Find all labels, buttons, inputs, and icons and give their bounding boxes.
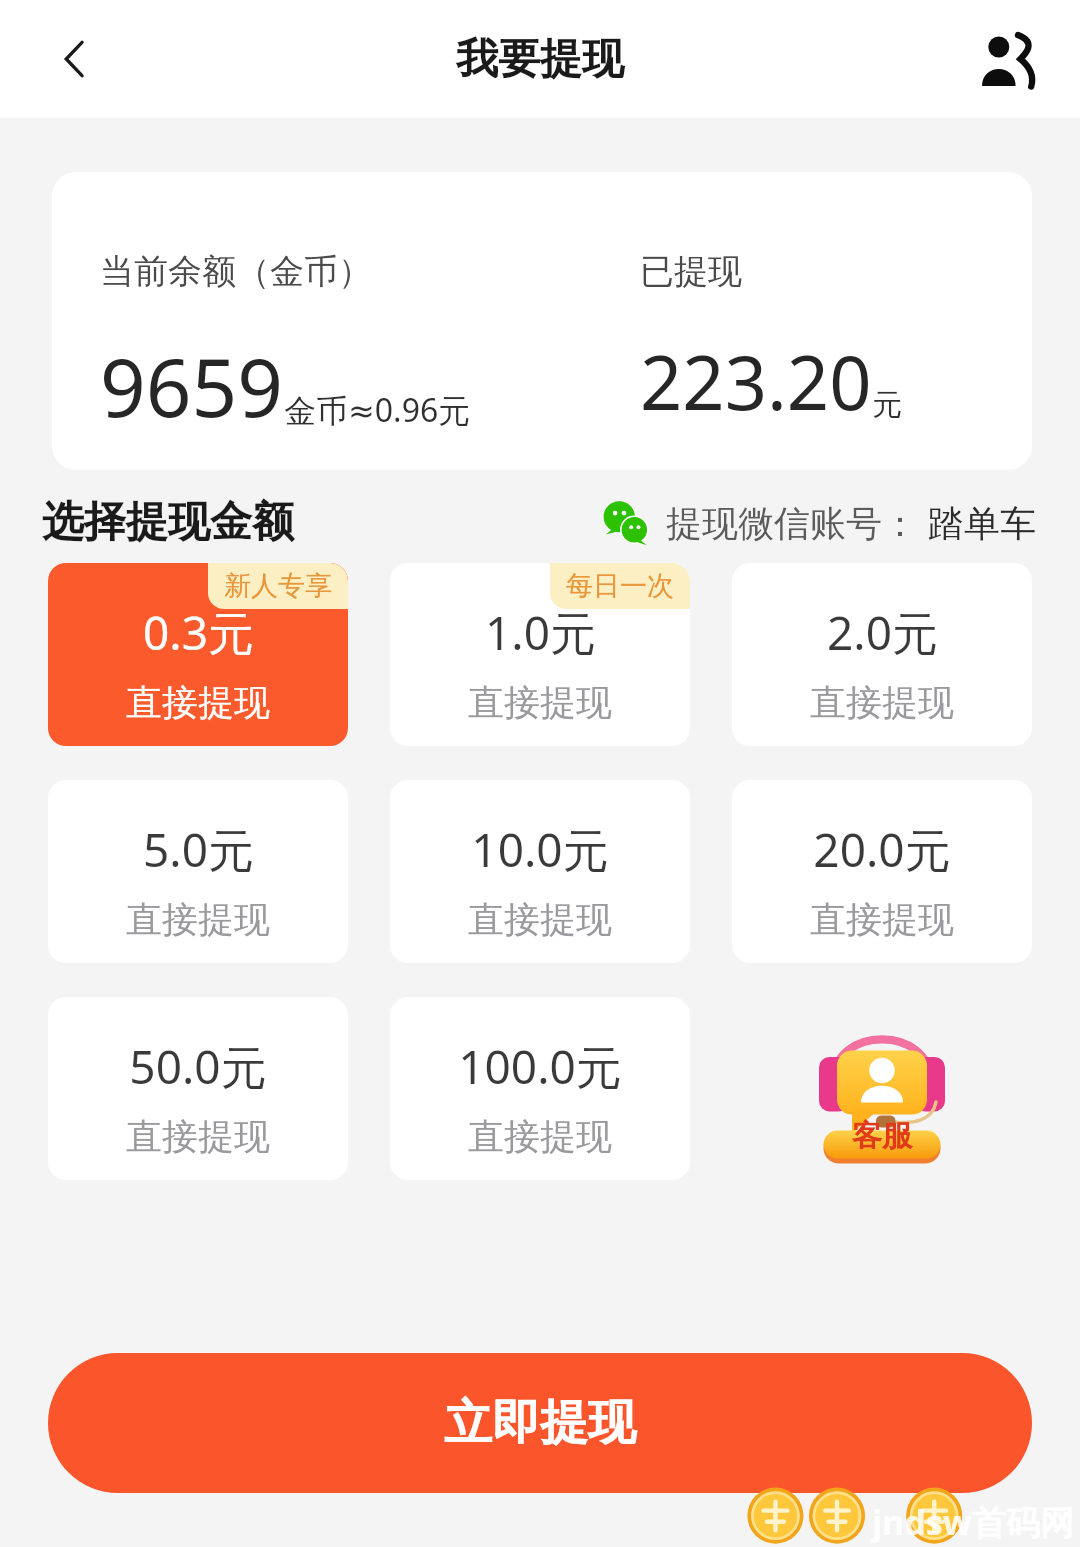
button[interactable]: 提现微信账号：	[600, 497, 1036, 549]
staticText: 直接提现	[126, 897, 270, 942]
staticText: 1.0元	[485, 601, 596, 664]
staticText: 踏单车	[928, 501, 1036, 546]
button[interactable]: Customer service	[807, 1009, 957, 1169]
button[interactable]: 50.0元	[48, 997, 348, 1180]
button[interactable]: Contacts	[966, 19, 1046, 99]
button[interactable]: 2.0元	[732, 563, 1032, 746]
staticText: 223.20	[640, 331, 872, 432]
staticText: 50.0元	[129, 1035, 267, 1098]
staticText: 选择提现金额	[42, 496, 294, 549]
button[interactable]: Back	[40, 24, 110, 94]
staticText: 当前余额（金币）	[100, 250, 372, 293]
button[interactable]: 每日一次	[390, 563, 690, 746]
staticText: 已提现	[640, 250, 742, 293]
staticText: 直接提现	[468, 897, 612, 942]
staticText: 直接提现	[810, 680, 954, 725]
button[interactable]: 100.0元	[390, 997, 690, 1180]
staticText: 我要提现	[456, 33, 624, 86]
staticText: 直接提现	[126, 680, 270, 725]
staticText: 10.0元	[471, 818, 609, 881]
button[interactable]: 5.0元	[48, 780, 348, 963]
staticText: 元	[872, 386, 902, 424]
staticText: 0.3元	[143, 601, 254, 664]
staticText: 直接提现	[126, 1114, 270, 1159]
staticText: 直接提现	[468, 680, 612, 725]
button[interactable]: 立即提现	[48, 1353, 1032, 1493]
staticText: 5.0元	[143, 818, 254, 881]
staticText: 金币≈0.96元	[284, 388, 471, 432]
staticText: 20.0元	[813, 818, 951, 881]
staticText: 直接提现	[468, 1114, 612, 1159]
button[interactable]: 新人专享	[48, 563, 348, 746]
button[interactable]: 20.0元	[732, 780, 1032, 963]
staticText: 立即提现	[444, 1393, 636, 1453]
staticText: 直接提现	[810, 897, 954, 942]
staticText: 2.0元	[827, 601, 938, 664]
staticText: 新人专享	[224, 569, 332, 603]
staticText: 100.0元	[458, 1035, 622, 1098]
staticText: 每日一次	[566, 569, 674, 603]
staticText: 客服	[852, 1117, 912, 1155]
staticText: 9659	[100, 331, 284, 440]
staticText: 提现微信账号：	[666, 501, 918, 546]
staticText: jndsw首码网	[872, 1499, 1074, 1545]
button[interactable]: 10.0元	[390, 780, 690, 963]
